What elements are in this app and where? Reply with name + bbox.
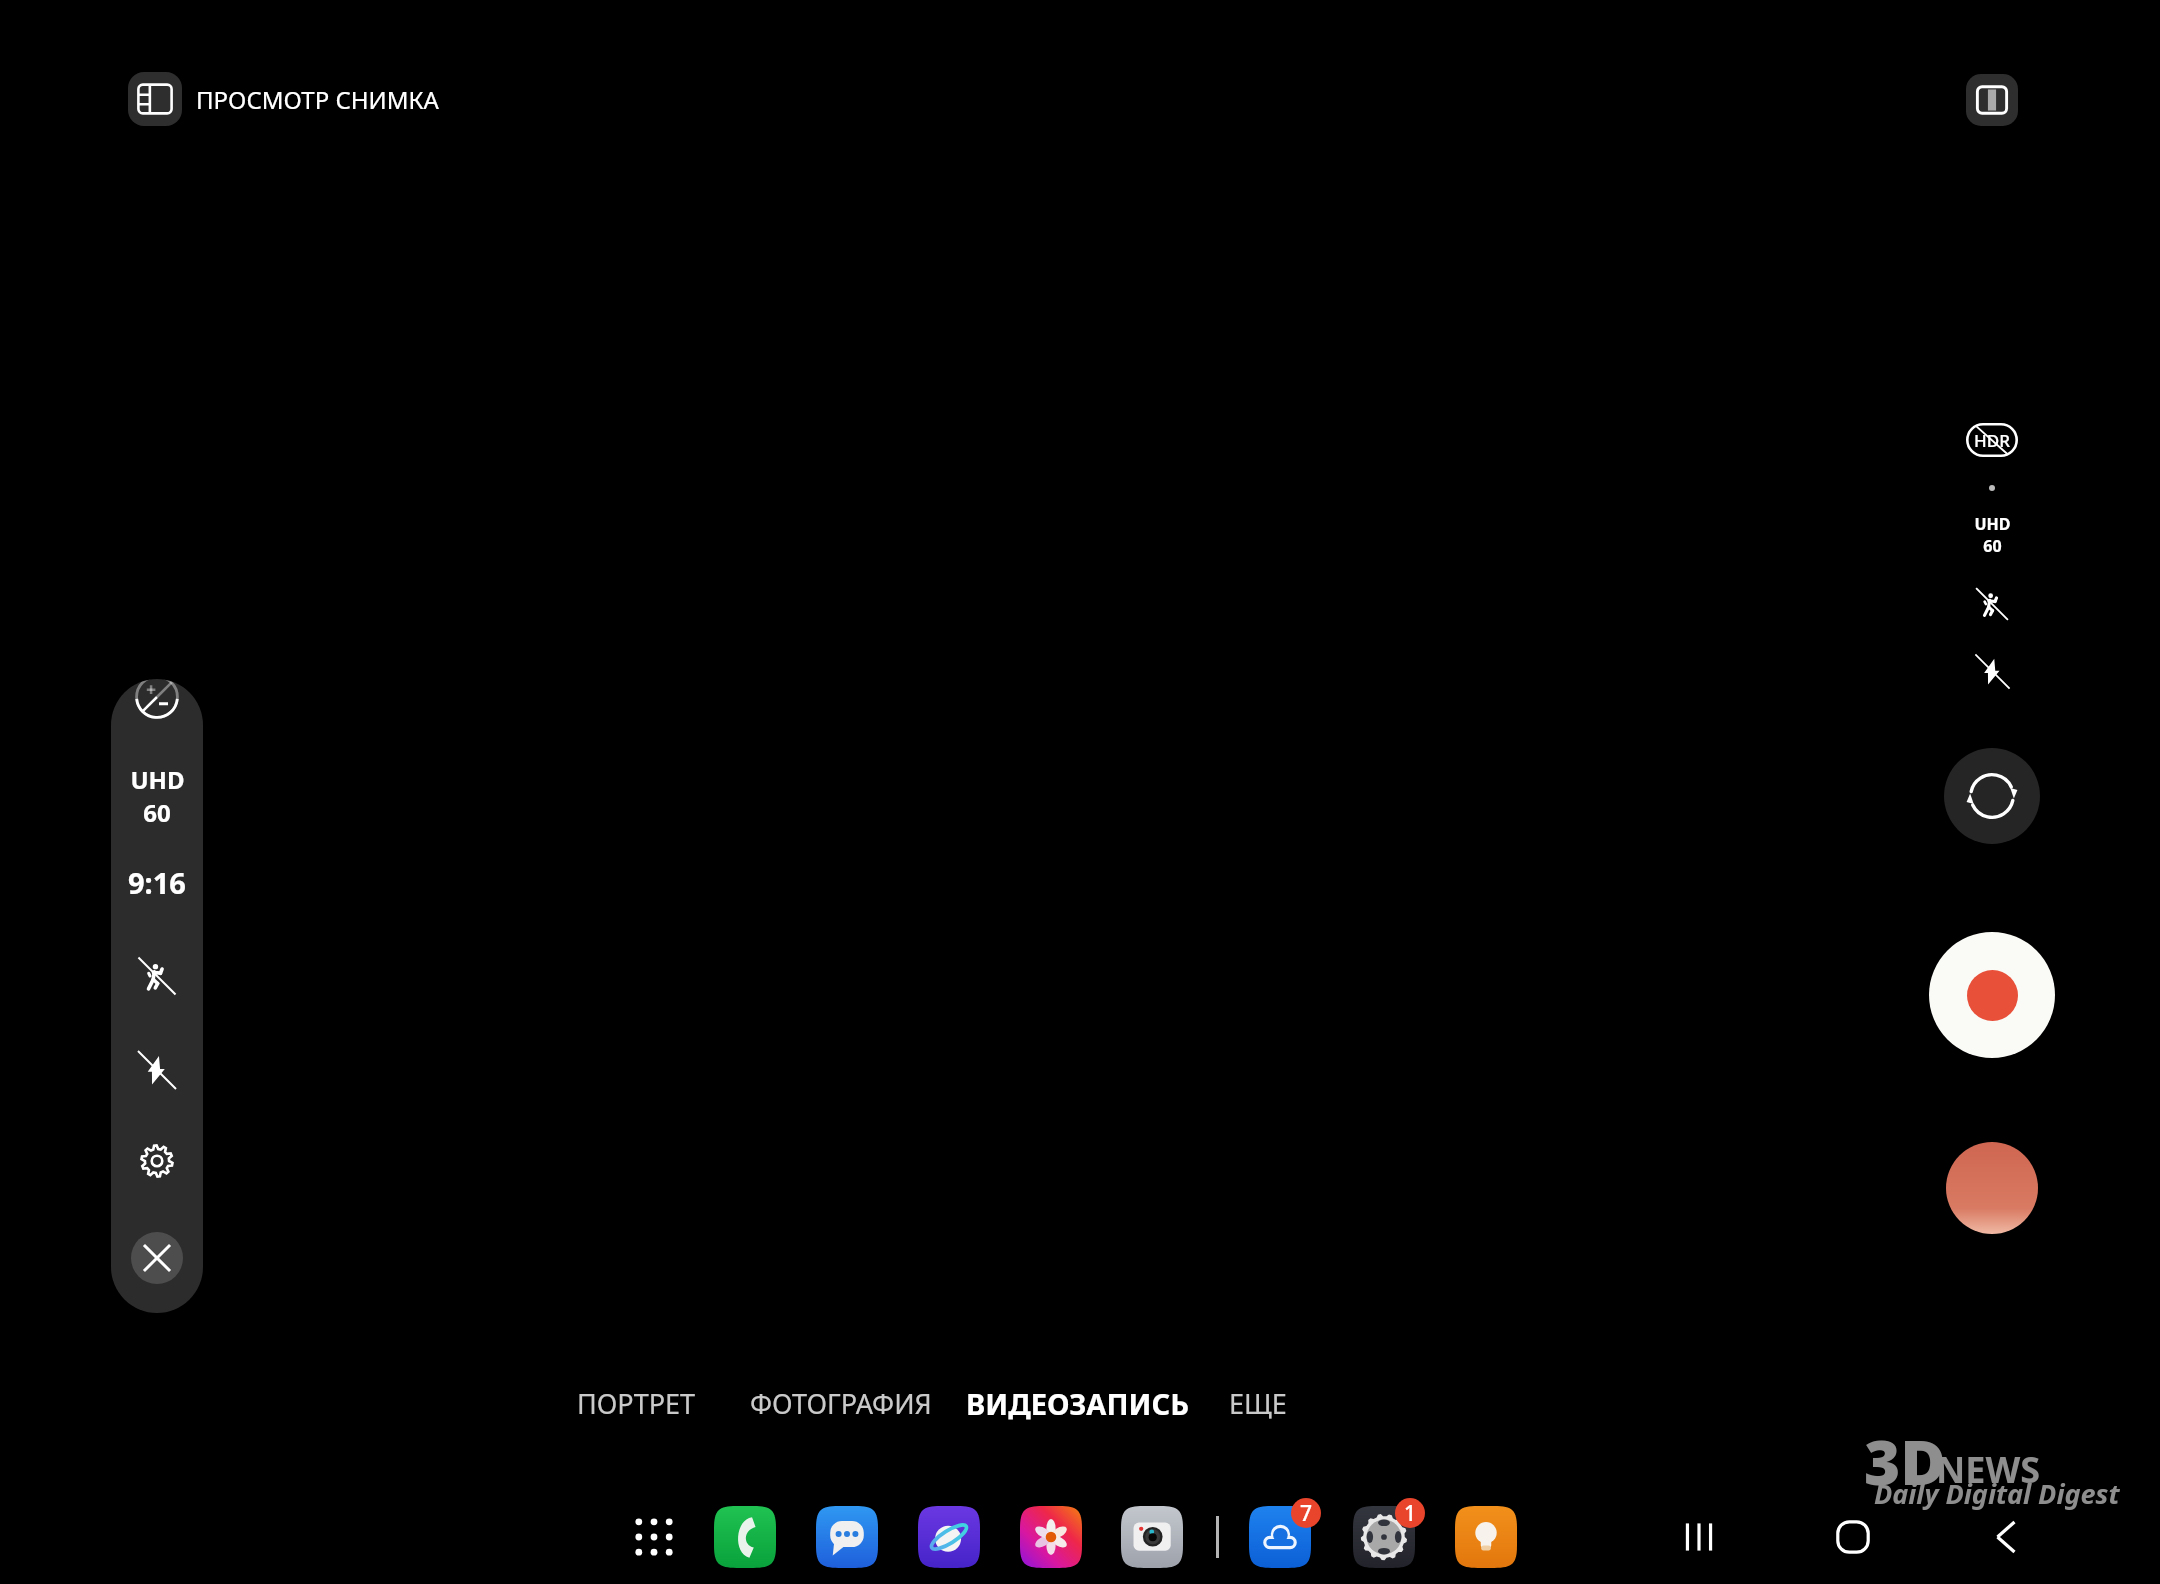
staticText: 60 (1983, 535, 2002, 557)
button[interactable]: ФОТОГРАФИЯ (748, 1379, 934, 1428)
button[interactable]: ПРОСМОТР СНИМКА (128, 72, 439, 126)
button[interactable]: Messages (816, 1506, 878, 1568)
button[interactable]: Switch camera (1944, 748, 2040, 844)
button[interactable]: ВИДЕОЗАПИСЬ (964, 1378, 1191, 1429)
button[interactable]: Settings (127, 1131, 187, 1191)
staticText: HDR (1974, 429, 2010, 452)
button[interactable]: ЕЩЕ (1227, 1379, 1289, 1428)
staticText: 60 (143, 796, 171, 829)
staticText: ВИДЕОЗАПИСЬ (966, 1384, 1189, 1423)
staticText: UHD (130, 763, 185, 796)
button[interactable]: Close (131, 1232, 183, 1284)
staticText: 9:16 (128, 863, 186, 902)
button[interactable]: Layout (1966, 74, 2018, 126)
staticText: NEWS (1936, 1445, 2041, 1494)
staticText: 1 (1404, 1499, 1417, 1528)
button[interactable]: Home (1806, 1490, 1900, 1584)
staticText: ПРОСМОТР СНИМКА (196, 83, 439, 116)
staticText: 7 (1300, 1499, 1313, 1528)
button[interactable]: Exposure (135, 679, 179, 719)
button[interactable]: UHD (111, 763, 203, 829)
button[interactable]: Phone (714, 1506, 776, 1568)
button[interactable]: Gallery (1946, 1142, 2038, 1234)
staticText: 3D (1864, 1419, 1946, 1503)
staticText: Daily Digital Digest (1874, 1475, 2120, 1512)
button[interactable]: Recents (1652, 1490, 1746, 1584)
button[interactable]: Flash off (127, 1040, 187, 1100)
button[interactable]: UHD (1940, 513, 2044, 557)
staticText: ПОРТРЕТ (577, 1385, 696, 1422)
staticText: ЕЩЕ (1229, 1385, 1287, 1422)
button[interactable]: Stabilisation off (1966, 578, 2018, 630)
button[interactable]: Stabilisation off (127, 946, 187, 1006)
button[interactable]: Gallery (1020, 1506, 1082, 1568)
button[interactable]: Back (1960, 1490, 2054, 1584)
button[interactable]: Record (1929, 932, 2055, 1058)
staticText: ФОТОГРАФИЯ (750, 1385, 932, 1422)
button[interactable]: Tips (1455, 1506, 1517, 1568)
button[interactable]: 9:16 (111, 862, 203, 902)
button[interactable]: Camera (1121, 1506, 1183, 1568)
staticText: UHD (1974, 513, 2011, 535)
button[interactable]: ПОРТРЕТ (575, 1379, 698, 1428)
button[interactable]: All apps (614, 1497, 694, 1577)
button[interactable]: HDR off (1966, 423, 2018, 457)
button[interactable]: Flash off (1966, 645, 2018, 697)
button[interactable]: Settings (1353, 1506, 1415, 1568)
button[interactable]: Cloud (1249, 1506, 1311, 1568)
button[interactable]: Internet (918, 1506, 980, 1568)
